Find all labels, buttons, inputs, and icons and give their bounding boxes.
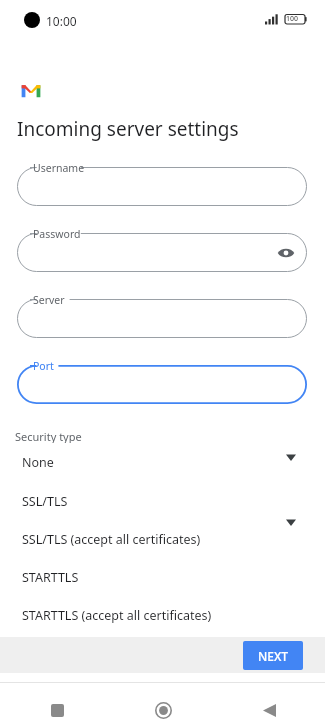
button[interactable]: Password	[17, 233, 307, 272]
button[interactable]: Show password	[275, 242, 297, 264]
button[interactable]: Port	[17, 365, 307, 404]
button[interactable]: STARTTLS	[12, 558, 274, 596]
button[interactable]: Open dropdown	[286, 518, 296, 526]
staticText: Incoming server settings	[17, 116, 239, 142]
button[interactable]: Server	[17, 299, 307, 338]
button[interactable]: STARTTLS (accept all certificates)	[12, 596, 274, 634]
staticText: SSL/TLS (accept all certificates)	[22, 531, 201, 548]
button[interactable]: None	[12, 443, 274, 482]
staticText: 10:00	[46, 13, 77, 29]
staticText: SSL/TLS	[22, 493, 68, 510]
staticText: Password	[33, 227, 81, 241]
staticText: Security type	[15, 429, 82, 444]
button[interactable]: SSL/TLS (accept all certificates)	[12, 520, 274, 558]
button[interactable]: NEXT	[243, 641, 303, 670]
staticText: Username	[33, 161, 85, 175]
button[interactable]: Username	[17, 167, 307, 206]
button[interactable]: Back	[252, 693, 286, 724]
staticText: STARTTLS	[22, 569, 79, 586]
staticText: 100	[286, 14, 299, 24]
staticText: Server	[33, 293, 65, 307]
button[interactable]: SSL/TLS	[12, 482, 274, 520]
button[interactable]: Recent apps	[40, 693, 74, 724]
staticText: Port	[33, 359, 54, 373]
staticText: NEXT	[258, 648, 289, 664]
button[interactable]: Open dropdown	[286, 453, 296, 461]
staticText: STARTTLS (accept all certificates)	[22, 607, 212, 624]
staticText: None	[22, 454, 54, 471]
button[interactable]: Home	[146, 693, 180, 724]
